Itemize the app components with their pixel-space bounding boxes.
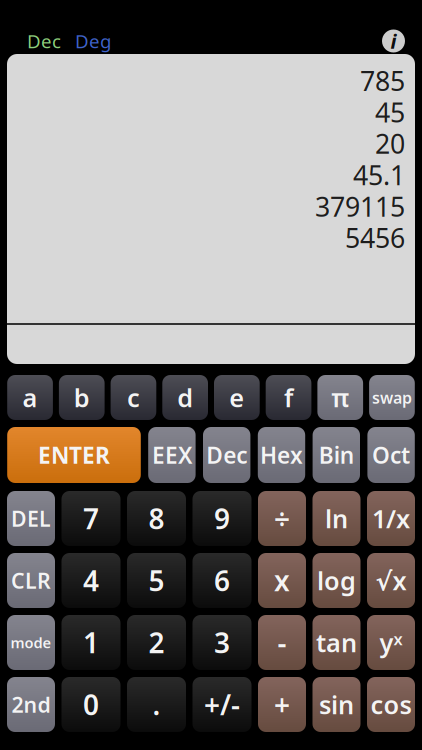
staticText: ENTER — [38, 440, 110, 470]
staticText: 379115 — [315, 189, 405, 224]
staticText: √x — [375, 564, 406, 597]
staticText: tan — [316, 626, 357, 659]
button[interactable]: b — [59, 375, 105, 420]
staticText: CLR — [11, 566, 51, 595]
button[interactable]: π — [317, 375, 363, 420]
staticText: 4 — [83, 562, 99, 599]
staticText: swap — [372, 387, 412, 408]
button[interactable]: ln — [312, 491, 360, 546]
staticText: 5456 — [345, 220, 405, 255]
staticText: i — [390, 28, 396, 54]
staticText: log — [317, 564, 356, 597]
button[interactable]: 4 — [61, 553, 120, 608]
button[interactable]: Dec — [203, 427, 250, 483]
staticText: 45.1 — [353, 157, 405, 193]
button[interactable]: 2nd — [7, 677, 55, 732]
staticText: 1/x — [372, 502, 410, 535]
staticText: f — [284, 381, 293, 414]
button[interactable]: 6 — [192, 553, 251, 608]
staticText: 5 — [148, 562, 164, 599]
staticText: sin — [319, 688, 354, 721]
staticText: cos — [370, 688, 411, 721]
staticText: Dec — [27, 29, 61, 53]
button[interactable]: + — [258, 677, 306, 732]
button[interactable]: . — [127, 677, 186, 732]
button[interactable]: +/- — [192, 677, 251, 732]
staticText: Dec — [206, 440, 247, 470]
staticText: 6 — [214, 562, 230, 599]
button[interactable]: 0 — [61, 677, 120, 732]
staticText: e — [229, 381, 244, 414]
staticText: Bin — [319, 440, 354, 470]
staticText: c — [127, 381, 140, 414]
staticText: Oct — [372, 440, 410, 470]
button[interactable]: tan — [312, 615, 360, 670]
button[interactable]: Deg — [75, 24, 123, 58]
staticText: 45 — [375, 94, 405, 130]
staticText: 785 — [360, 63, 405, 98]
staticText: 2nd — [11, 690, 50, 719]
staticText: ÷ — [274, 500, 290, 537]
button[interactable]: Oct — [367, 427, 415, 483]
staticText: 9 — [214, 500, 230, 537]
button[interactable]: √x — [367, 553, 415, 608]
staticText: mode — [10, 633, 51, 652]
staticText: 0 — [83, 686, 99, 723]
button[interactable]: EEX — [148, 427, 196, 483]
staticText: d — [177, 381, 193, 414]
staticText: Hex — [260, 440, 303, 470]
staticText: yˣ — [379, 626, 402, 659]
button[interactable]: ÷ — [258, 491, 306, 546]
button[interactable]: sin — [312, 677, 360, 732]
staticText: π — [331, 381, 349, 414]
button[interactable]: Bin — [313, 427, 360, 483]
button[interactable]: 3 — [192, 615, 251, 670]
staticText: DEL — [11, 504, 51, 533]
staticText: 1 — [83, 624, 99, 661]
staticText: 3 — [214, 624, 230, 661]
button[interactable]: CLR — [7, 553, 55, 608]
button[interactable]: cos — [367, 677, 415, 732]
button[interactable]: d — [162, 375, 208, 420]
button[interactable]: 5 — [127, 553, 186, 608]
button[interactable]: x — [258, 553, 306, 608]
staticText: EEX — [152, 440, 192, 470]
button[interactable]: a — [7, 375, 53, 420]
staticText: 8 — [148, 500, 164, 537]
button[interactable]: Info — [382, 29, 405, 52]
staticText: Deg — [75, 29, 111, 53]
button[interactable]: 7 — [61, 491, 120, 546]
button[interactable]: Hex — [258, 427, 305, 483]
button[interactable]: - — [258, 615, 306, 670]
staticText: b — [74, 381, 90, 414]
staticText: - — [277, 624, 286, 661]
staticText: +/- — [204, 686, 240, 723]
staticText: ln — [325, 502, 348, 535]
button[interactable]: 8 — [127, 491, 186, 546]
button[interactable]: c — [111, 375, 156, 420]
button[interactable]: mode — [7, 615, 55, 670]
button[interactable]: ENTER — [7, 427, 141, 483]
button[interactable]: yˣ — [367, 615, 415, 670]
button[interactable]: 9 — [192, 491, 251, 546]
staticText: + — [274, 686, 290, 723]
staticText: a — [23, 381, 38, 414]
button[interactable]: swap — [369, 375, 415, 420]
staticText: 7 — [83, 500, 99, 537]
button[interactable]: 1 — [61, 615, 120, 670]
button[interactable]: e — [214, 375, 260, 420]
staticText: 20 — [375, 126, 405, 161]
button[interactable]: Dec — [27, 24, 75, 58]
staticText: x — [274, 562, 290, 599]
button[interactable]: DEL — [7, 491, 55, 546]
button[interactable]: f — [266, 375, 311, 420]
button[interactable]: log — [312, 553, 360, 608]
button[interactable]: 2 — [127, 615, 186, 670]
staticText: 2 — [148, 624, 164, 661]
staticText: . — [152, 686, 160, 723]
button[interactable]: 1/x — [367, 491, 415, 546]
